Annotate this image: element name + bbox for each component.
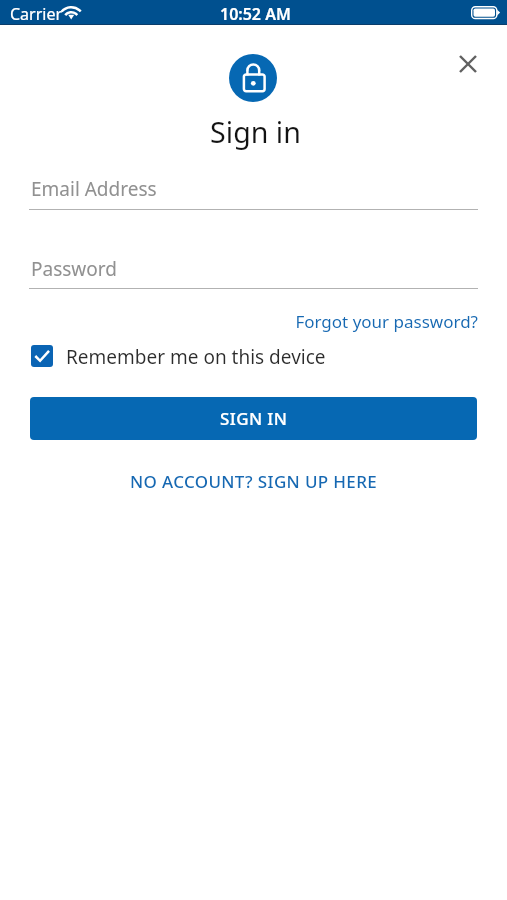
staticText: NO ACCOUNT? SIGN UP HERE	[130, 470, 378, 493]
button[interactable]: Close	[446, 42, 490, 86]
staticText: Forgot your password?	[295, 310, 478, 333]
button[interactable]: Remember me on this device	[31, 344, 331, 368]
button[interactable]: Password	[29, 248, 478, 289]
staticText: SIGN IN	[220, 407, 288, 430]
staticText: Remember me on this device	[66, 344, 326, 368]
other: Battery full	[471, 6, 503, 20]
staticText: 10:52 AM	[220, 3, 291, 25]
staticText: Sign in	[2, 112, 507, 151]
button[interactable]: Email Address	[29, 168, 478, 210]
button[interactable]: NO ACCOUNT? SIGN UP HERE	[0, 466, 507, 496]
staticText: Carrier	[10, 3, 63, 25]
button[interactable]: Forgot your password?	[290, 308, 478, 334]
other: Wi-Fi	[56, 0, 88, 24]
staticText: Email Address	[31, 176, 157, 202]
button[interactable]: SIGN IN	[30, 397, 477, 440]
staticText: Password	[31, 256, 117, 282]
